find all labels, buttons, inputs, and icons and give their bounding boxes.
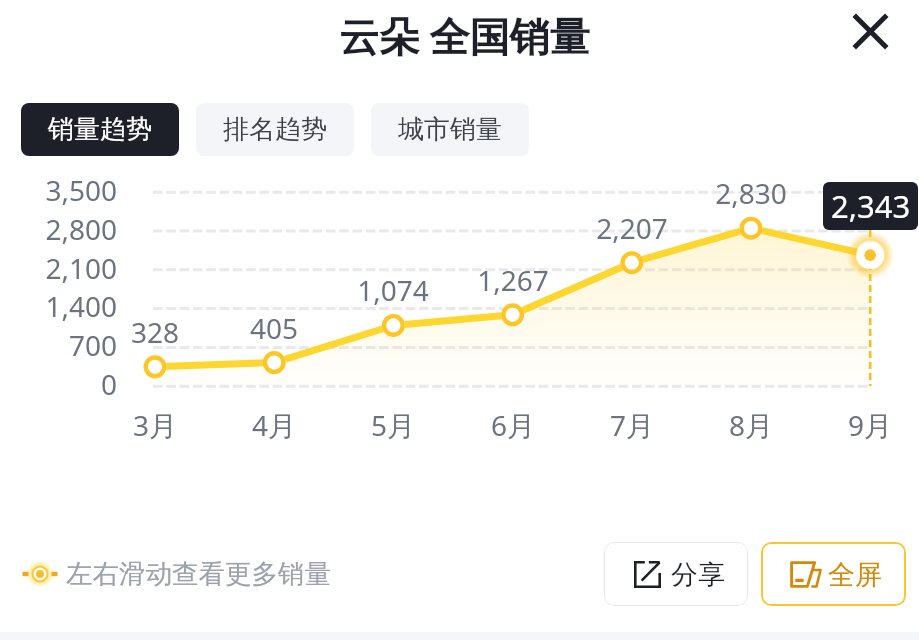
staticText: 全屏: [828, 558, 882, 592]
staticText: 城市销量: [398, 113, 502, 146]
button[interactable]: 全屏: [761, 542, 906, 606]
button[interactable]: 排名趋势: [196, 103, 354, 156]
staticText: 分享: [671, 558, 725, 592]
staticText: 排名趋势: [223, 113, 327, 146]
staticText: 0: [18, 365, 117, 403]
staticText: 4月: [224, 406, 324, 444]
staticText: 2,800: [18, 210, 117, 248]
staticText: 3月: [105, 406, 205, 444]
staticText: 7月: [582, 406, 682, 444]
staticText: 6月: [463, 406, 563, 444]
button[interactable]: 销量趋势: [21, 103, 179, 156]
staticText: 2,830: [701, 174, 801, 212]
staticText: 8月: [701, 406, 801, 444]
staticText: 2,100: [18, 249, 117, 287]
staticText: 销量趋势: [48, 113, 152, 146]
button[interactable]: 分享: [604, 542, 748, 606]
staticText: 2,343: [831, 185, 911, 227]
button[interactable]: 城市销量: [371, 103, 529, 156]
staticText: 1,267: [463, 261, 563, 299]
staticText: 3,500: [18, 171, 117, 209]
staticText: 9月: [820, 406, 919, 444]
staticText: 1,400: [18, 287, 117, 325]
staticText: 左右滑动查看更多销量: [66, 557, 331, 590]
staticText: 328: [105, 313, 205, 351]
staticText: 700: [18, 326, 117, 364]
staticText: 云朵 全国销量: [339, 8, 590, 63]
button[interactable]: Close: [846, 7, 894, 55]
staticText: 1,074: [343, 271, 443, 309]
button[interactable]: 左右滑动查看更多销量: [22, 557, 331, 590]
staticText: 405: [224, 309, 324, 347]
staticText: 2,207: [582, 209, 682, 247]
staticText: 5月: [343, 406, 443, 444]
